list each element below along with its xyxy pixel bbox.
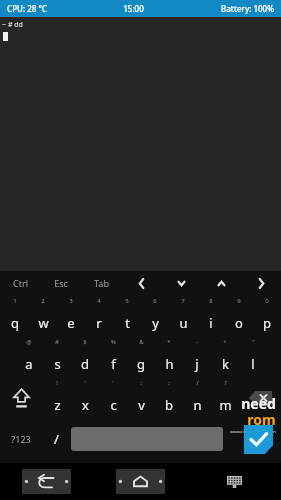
staticText: % [111, 338, 116, 346]
staticText: 1 [13, 297, 17, 305]
button[interactable]: + [211, 336, 239, 377]
staticText: www.needrom.com [230, 429, 276, 433]
button[interactable]: Enter [236, 418, 281, 460]
staticText: - [196, 338, 198, 346]
staticText: 4 [97, 297, 101, 305]
staticText: " [252, 338, 255, 346]
staticText: CPU: 28 °C [7, 3, 47, 14]
staticText: ! [56, 379, 58, 387]
button[interactable]: ?123 [0, 418, 42, 460]
staticText: h [165, 355, 174, 373]
button[interactable]: Shift [0, 377, 43, 418]
staticText: ' [112, 379, 114, 387]
staticText: r [96, 314, 102, 332]
staticText: : [140, 379, 142, 387]
staticText: g [137, 355, 145, 373]
button[interactable]: / [183, 377, 211, 418]
button[interactable]: 1 [0, 295, 29, 336]
button[interactable]: Space [71, 427, 223, 451]
button[interactable]: 3 [57, 295, 85, 336]
staticText: c [110, 396, 117, 414]
staticText: s [54, 355, 61, 373]
staticText: / [196, 379, 199, 387]
button[interactable]: Left [121, 271, 161, 295]
button[interactable]: Back [0, 463, 93, 500]
staticText: t [125, 314, 130, 332]
button[interactable]: # [43, 336, 71, 377]
staticText: v [138, 396, 145, 414]
button[interactable]: ! [43, 377, 71, 418]
staticText: ? [224, 379, 227, 387]
staticText: 3 [69, 297, 73, 305]
staticText: l [251, 355, 255, 373]
staticText: b [165, 396, 173, 414]
staticText: @ [26, 338, 32, 346]
button[interactable]: 4 [85, 295, 113, 336]
staticText: # [55, 338, 59, 346]
button[interactable]: 6 [141, 295, 169, 336]
button[interactable]: 8 [197, 295, 225, 336]
button[interactable]: Tab [81, 271, 121, 295]
staticText: Ctrl [13, 277, 28, 289]
staticText: ~ # dd [2, 20, 23, 30]
staticText: n [193, 396, 202, 414]
staticText: d [81, 355, 89, 373]
button[interactable]: ; [155, 377, 183, 418]
button[interactable]: * [155, 336, 183, 377]
staticText: rom [247, 410, 276, 429]
button[interactable]: Up [201, 271, 241, 295]
staticText: Battery: 100% [221, 3, 274, 14]
button[interactable]: " [239, 336, 267, 377]
button[interactable]: @ [15, 336, 43, 377]
staticText: / [54, 430, 59, 448]
button[interactable]: Esc [41, 271, 81, 295]
staticText: j [195, 355, 199, 373]
staticText: 7 [181, 297, 185, 305]
staticText: p [263, 314, 271, 332]
button[interactable]: 7 [169, 295, 197, 336]
staticText: q [11, 314, 19, 332]
button[interactable]: Keyboard [187, 463, 281, 500]
staticText: 0 [265, 297, 269, 305]
button[interactable]: Ctrl [0, 271, 41, 295]
staticText: z [54, 396, 61, 414]
button[interactable]: Down [161, 271, 201, 295]
staticText: o [235, 314, 243, 332]
staticText: * [167, 338, 171, 346]
staticText: x [82, 396, 89, 414]
staticText: u [179, 314, 188, 332]
staticText: y [152, 314, 159, 332]
button[interactable]: : [127, 377, 155, 418]
button[interactable]: % [99, 336, 127, 377]
button[interactable]: Right [241, 271, 281, 295]
staticText: & [139, 338, 144, 346]
staticText: m [219, 396, 232, 414]
staticText: + [223, 338, 227, 346]
staticText: Tab [94, 277, 109, 289]
staticText: 9 [237, 297, 241, 305]
staticText: 8 [209, 297, 213, 305]
button[interactable]: & [127, 336, 155, 377]
button[interactable]: 2 [29, 295, 57, 336]
staticText: k [222, 355, 229, 373]
staticText: a [25, 355, 33, 373]
staticText: 6 [153, 297, 157, 305]
button[interactable]: ' [99, 377, 127, 418]
button[interactable]: Backspace [239, 377, 281, 418]
button[interactable]: / [42, 418, 71, 460]
button[interactable]: 0 [253, 295, 281, 336]
button[interactable]: 5 [113, 295, 141, 336]
staticText: ' [84, 379, 86, 387]
staticText: $ [83, 338, 87, 346]
button[interactable]: Home [93, 463, 187, 500]
staticText: f [111, 355, 116, 373]
button[interactable]: - [183, 336, 211, 377]
button[interactable]: 9 [225, 295, 253, 336]
button[interactable]: $ [71, 336, 99, 377]
button[interactable]: ? [211, 377, 239, 418]
staticText: ; [168, 379, 170, 387]
staticText: i [209, 314, 213, 332]
staticText: e [67, 314, 75, 332]
button[interactable]: ' [71, 377, 99, 418]
staticText: need [241, 394, 276, 413]
